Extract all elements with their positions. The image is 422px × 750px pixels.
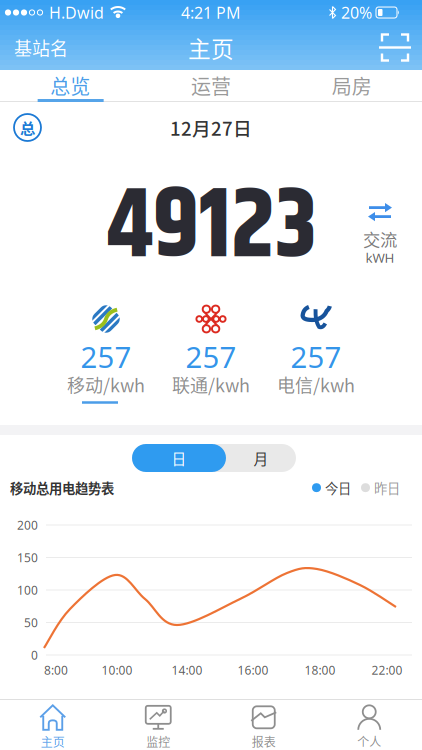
staticText: 交流 (363, 226, 397, 252)
staticText: 200 (17, 517, 38, 533)
staticText: 4:21 PM (181, 2, 241, 23)
button[interactable]: 总览 (0, 70, 141, 101)
button[interactable]: 运营 (141, 70, 281, 101)
staticText: kWH (365, 249, 394, 266)
staticText: 8:00 (44, 662, 68, 678)
staticText: 257 (290, 337, 341, 376)
staticText: 150 (17, 549, 38, 565)
staticText: 日 (171, 447, 186, 469)
staticText: 总 (20, 116, 35, 139)
staticText: 报表 (252, 733, 276, 750)
staticText: 20% (341, 2, 372, 23)
staticText: 运营 (191, 71, 231, 100)
staticText: 昨日 (374, 478, 400, 497)
staticText: 今日 (325, 478, 351, 497)
staticText: 18:00 (304, 662, 335, 678)
staticText: 50 (24, 614, 38, 630)
button[interactable]: 局房 (281, 70, 422, 101)
button[interactable]: 基站名 (14, 34, 68, 61)
staticText: 257 (80, 337, 131, 376)
button[interactable]: 日 (132, 444, 226, 472)
staticText: 移动/kwh (67, 371, 145, 398)
staticText: 14:00 (171, 662, 202, 678)
button[interactable]: 月 (226, 444, 296, 472)
staticText: 16:00 (237, 662, 268, 678)
staticText: 总览 (50, 71, 90, 100)
button[interactable]: 个人 (316, 702, 422, 750)
staticText: 0 (31, 647, 38, 663)
staticText: 局房 (332, 71, 372, 100)
staticText: 电信/kwh (277, 371, 355, 398)
staticText: 主页 (188, 31, 234, 64)
staticText: 49123 (107, 153, 317, 303)
button[interactable]: 主页 (0, 702, 105, 750)
staticText: 100 (17, 582, 38, 598)
staticText: 12月27日 (170, 114, 252, 141)
staticText: 个人 (357, 733, 381, 750)
staticText: 22:00 (371, 662, 402, 678)
button[interactable]: Scan (382, 34, 408, 60)
staticText: 联通/kwh (172, 371, 250, 398)
staticText: H.Dwid (49, 2, 104, 23)
staticText: 移动总用电趋势表 (10, 478, 114, 497)
staticText: 月 (253, 447, 268, 469)
staticText: 主页 (41, 733, 65, 750)
button[interactable]: 监控 (105, 702, 211, 750)
staticText: 257 (185, 337, 236, 376)
staticText: 监控 (146, 733, 170, 750)
staticText: 基站名 (14, 34, 68, 61)
button[interactable]: 报表 (211, 702, 316, 750)
staticText: 10:00 (101, 662, 132, 678)
